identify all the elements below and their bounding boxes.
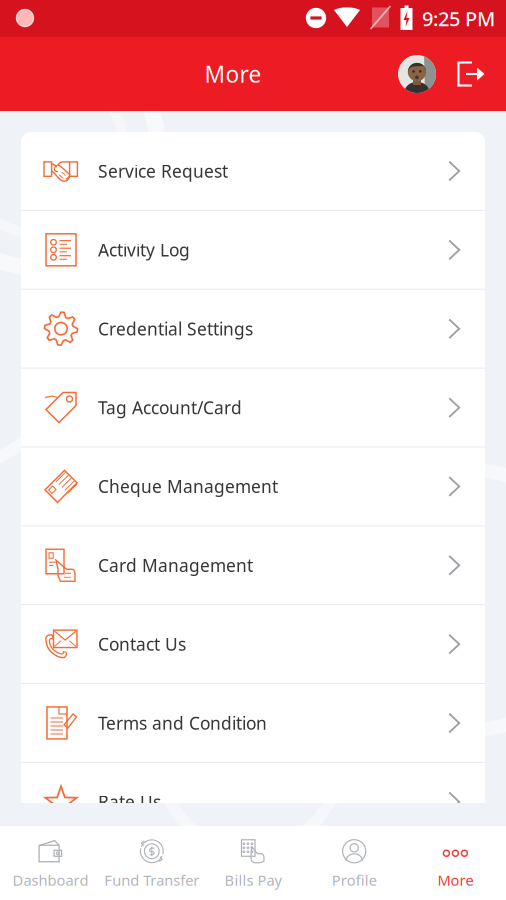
staticText: Bills Pay <box>224 870 281 890</box>
button[interactable]: Card Management <box>21 526 485 604</box>
button[interactable]: Profile <box>393 50 441 98</box>
staticText: Profile <box>332 870 377 890</box>
staticText: 9:25 PM <box>422 5 495 32</box>
staticText: Contact Us <box>98 633 186 656</box>
button[interactable]: Activity Log <box>21 211 485 289</box>
staticText: Rate Us <box>98 790 161 813</box>
staticText: Service Request <box>98 159 228 182</box>
button[interactable]: Tag Account/Card <box>21 369 485 446</box>
button[interactable]: Fund Transfer <box>101 827 202 899</box>
staticText: Terms and Condition <box>98 711 267 734</box>
staticText: Dashboard <box>13 870 89 890</box>
staticText: Locate Us <box>98 869 177 892</box>
button[interactable]: Terms and Condition <box>21 684 485 762</box>
button[interactable]: Locate Us <box>21 842 485 900</box>
button[interactable]: Rate Us <box>21 763 485 841</box>
button[interactable]: More <box>405 827 506 899</box>
button[interactable]: Log out <box>441 61 506 87</box>
staticText: Activity Log <box>98 238 190 261</box>
button[interactable]: Bills Pay <box>202 827 304 899</box>
staticText: More <box>437 870 473 890</box>
button[interactable]: Contact Us <box>21 605 485 683</box>
staticText: Fund Transfer <box>104 870 199 890</box>
button[interactable]: Credential Settings <box>21 290 485 368</box>
staticText: Credential Settings <box>98 317 253 340</box>
staticText: Cheque Management <box>98 475 278 498</box>
staticText: Tag Account/Card <box>98 396 242 419</box>
button[interactable]: Profile <box>304 827 405 899</box>
button[interactable]: Cheque Management <box>21 447 485 525</box>
button[interactable]: Dashboard <box>0 827 101 899</box>
staticText: Card Management <box>98 554 253 577</box>
button[interactable]: Service Request <box>21 132 485 210</box>
staticText: More <box>204 59 261 89</box>
